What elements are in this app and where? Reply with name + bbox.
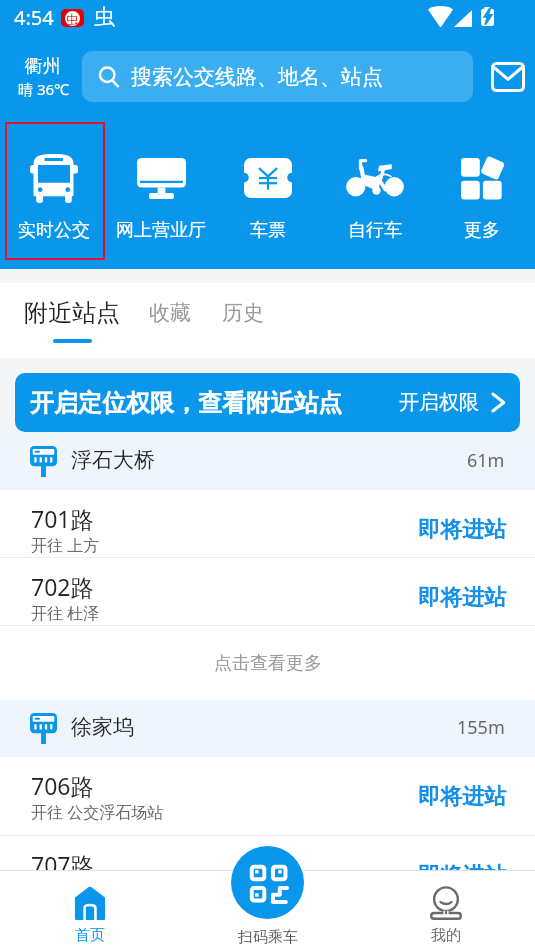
button[interactable]: 收藏 bbox=[149, 298, 191, 324]
staticText: 扫码乘车 bbox=[238, 928, 298, 947]
staticText: 即将进站 bbox=[418, 516, 506, 544]
staticText: 4:54 bbox=[14, 4, 54, 31]
staticText: 附近站点 bbox=[24, 298, 120, 328]
staticText: 点击查看更多 bbox=[214, 652, 322, 675]
staticText: 开往 沈家 bbox=[31, 880, 100, 902]
button[interactable]: 实时公交 bbox=[0, 122, 107, 260]
staticText: 即将进站 bbox=[418, 783, 506, 811]
button[interactable]: 首页 bbox=[0, 887, 179, 945]
staticText: 我的 bbox=[431, 926, 461, 945]
staticText: 702路 bbox=[31, 571, 94, 602]
button[interactable]: 车票 bbox=[214, 122, 321, 260]
staticText: 虫 bbox=[66, 11, 79, 26]
staticText: 155m bbox=[457, 715, 505, 740]
staticText: 首页 bbox=[75, 926, 105, 945]
button[interactable]: 点击查看更多 bbox=[0, 626, 535, 700]
button[interactable]: 我的 bbox=[357, 887, 535, 945]
staticText: 701路 bbox=[31, 503, 94, 534]
button[interactable]: 历史 bbox=[222, 298, 264, 324]
staticText: 开往 杜泽 bbox=[31, 602, 100, 624]
staticText: 实时公交 bbox=[18, 219, 90, 242]
staticText: 706路 bbox=[31, 770, 94, 801]
staticText: 更多 bbox=[464, 219, 500, 242]
staticText: 707路 bbox=[31, 849, 94, 880]
staticText: 即将进站 bbox=[418, 584, 506, 612]
staticText: 自行车 bbox=[348, 219, 402, 242]
staticText: 开启定位权限，查看附近站点 bbox=[30, 388, 342, 418]
staticText: 衢州 bbox=[25, 55, 61, 78]
button[interactable]: Messages bbox=[487, 56, 529, 98]
staticText: 搜索公交线路、地名、站点 bbox=[131, 64, 383, 90]
staticText: 61m bbox=[467, 448, 505, 473]
button[interactable]: 更多 bbox=[428, 122, 535, 260]
staticText: 虫 bbox=[94, 4, 115, 30]
button[interactable]: 网上营业厅 bbox=[107, 122, 214, 260]
button[interactable]: 706路 bbox=[0, 757, 535, 835]
button[interactable]: 自行车 bbox=[321, 122, 428, 260]
staticText: 开往 公交浮石场站 bbox=[31, 801, 164, 823]
button[interactable]: 707路 bbox=[0, 836, 535, 903]
staticText: 晴 36℃ bbox=[18, 79, 69, 99]
button[interactable]: 附近站点 bbox=[24, 298, 120, 343]
button[interactable]: 开启定位权限，查看附近站点 bbox=[15, 373, 520, 432]
button[interactable]: 徐家坞 bbox=[0, 700, 535, 757]
button[interactable]: 701路 bbox=[0, 490, 535, 557]
staticText: 网上营业厅 bbox=[116, 219, 206, 242]
staticText: 车票 bbox=[250, 219, 286, 242]
staticText: 开启权限 bbox=[399, 390, 479, 415]
staticText: 徐家坞 bbox=[71, 714, 134, 740]
button[interactable]: 浮石大桥 bbox=[0, 433, 535, 490]
staticText: 浮石大桥 bbox=[71, 447, 155, 473]
button[interactable]: 搜索公交线路、地名、站点 bbox=[82, 51, 473, 102]
button[interactable]: 衢州 bbox=[12, 55, 74, 99]
staticText: 收藏 bbox=[149, 300, 191, 326]
staticText: 历史 bbox=[222, 300, 264, 326]
button[interactable]: 扫码乘车 Scan QR bbox=[231, 846, 304, 919]
button[interactable]: 702路 bbox=[0, 558, 535, 625]
staticText: 即将进站 bbox=[418, 862, 506, 890]
staticText: 开往 上方 bbox=[31, 534, 100, 556]
